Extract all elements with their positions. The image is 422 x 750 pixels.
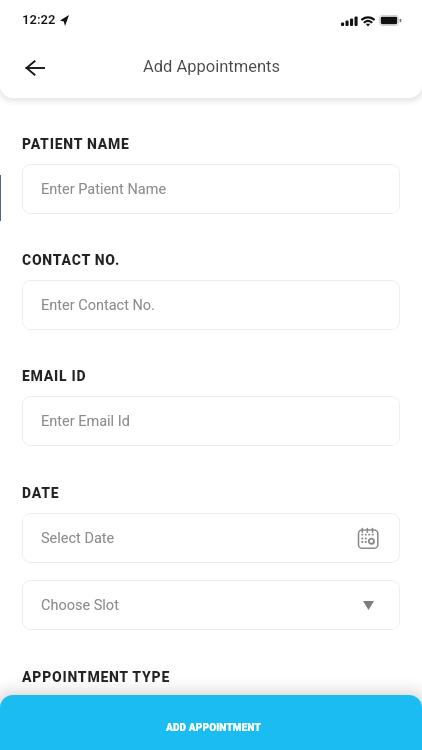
button[interactable]: Enter Email Id bbox=[22, 396, 400, 446]
staticText: APPOINTMENT TYPE bbox=[22, 669, 171, 685]
staticText: Enter Email Id bbox=[41, 413, 130, 430]
staticText: Enter Contact No. bbox=[41, 297, 155, 314]
staticText: Choose Slot bbox=[41, 597, 119, 614]
staticText: Add Appointments bbox=[143, 57, 280, 76]
staticText: Select Date bbox=[41, 530, 115, 547]
button[interactable]: Select Date bbox=[22, 513, 400, 563]
staticText: EMAIL ID bbox=[22, 368, 87, 384]
staticText: 12:22 bbox=[22, 12, 56, 27]
button[interactable]: Pick date bbox=[356, 526, 380, 550]
staticText: Enter Patient Name bbox=[41, 181, 167, 198]
button[interactable]: Enter Patient Name bbox=[22, 164, 400, 214]
button[interactable]: Enter Contact No. bbox=[22, 280, 400, 330]
button[interactable]: Choose Slot bbox=[22, 580, 400, 630]
button[interactable]: ADD APPOINTMENT bbox=[0, 695, 422, 750]
button[interactable]: Back bbox=[16, 50, 53, 85]
button[interactable]: Open slot list bbox=[357, 594, 379, 616]
staticText: CONTACT NO. bbox=[22, 252, 120, 268]
staticText: ADD APPOINTMENT bbox=[166, 722, 261, 734]
staticText: PATIENT NAME bbox=[22, 136, 130, 152]
staticText: DATE bbox=[22, 485, 60, 501]
